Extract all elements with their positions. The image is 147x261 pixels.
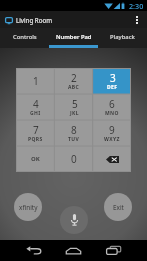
- staticText: 7: [33, 123, 39, 137]
- staticText: 2: [71, 71, 77, 85]
- staticText: Playback: [110, 33, 135, 41]
- staticText: WXYZ: [104, 136, 120, 143]
- button[interactable]: 1: [16, 68, 55, 94]
- button[interactable]: Playback: [98, 28, 147, 48]
- button[interactable]: Voice control: [60, 206, 88, 234]
- button[interactable]: Number Pad: [49, 28, 98, 48]
- staticText: OK: [31, 155, 40, 163]
- staticText: 4: [33, 97, 39, 111]
- button[interactable]: More options: [129, 11, 145, 28]
- button[interactable]: Home: [53, 240, 94, 261]
- staticText: 8: [71, 123, 77, 137]
- staticText: Number Pad: [56, 33, 92, 41]
- staticText: 0: [71, 152, 77, 166]
- button[interactable]: Recent apps: [93, 240, 134, 261]
- staticText: 3: [110, 71, 116, 85]
- button[interactable]: 5: [55, 94, 93, 120]
- staticText: JKL: [70, 110, 79, 117]
- staticText: Living Room: [16, 16, 52, 24]
- staticText: 2:30: [129, 1, 144, 11]
- staticText: 9: [109, 123, 115, 137]
- staticText: 5: [72, 97, 78, 111]
- staticText: GHI: [30, 110, 41, 117]
- staticText: PQRS: [28, 136, 43, 143]
- button[interactable]: OK: [16, 146, 55, 172]
- button[interactable]: 9: [93, 120, 131, 146]
- button[interactable]: Exit: [104, 193, 132, 221]
- staticText: Exit: [113, 203, 124, 212]
- staticText: 6: [109, 97, 115, 111]
- button[interactable]: 7: [16, 120, 55, 146]
- button[interactable]: 8: [55, 120, 93, 146]
- button[interactable]: 2: [55, 68, 93, 94]
- button[interactable]: 0: [55, 146, 93, 172]
- staticText: ABC: [68, 84, 80, 91]
- button[interactable]: 4: [16, 94, 55, 120]
- staticText: 1: [33, 74, 39, 88]
- staticText: DEF: [107, 84, 118, 91]
- staticText: MNO: [105, 110, 119, 117]
- button[interactable]: Back: [13, 240, 54, 261]
- button[interactable]: 6: [93, 94, 131, 120]
- button[interactable]: Backspace: [93, 146, 131, 172]
- button[interactable]: 3: [93, 68, 131, 94]
- staticText: TUV: [68, 136, 80, 143]
- button[interactable]: Controls: [0, 28, 49, 48]
- staticText: xfinity: [19, 203, 38, 212]
- button[interactable]: xfinity: [14, 193, 42, 221]
- staticText: Controls: [13, 33, 37, 41]
